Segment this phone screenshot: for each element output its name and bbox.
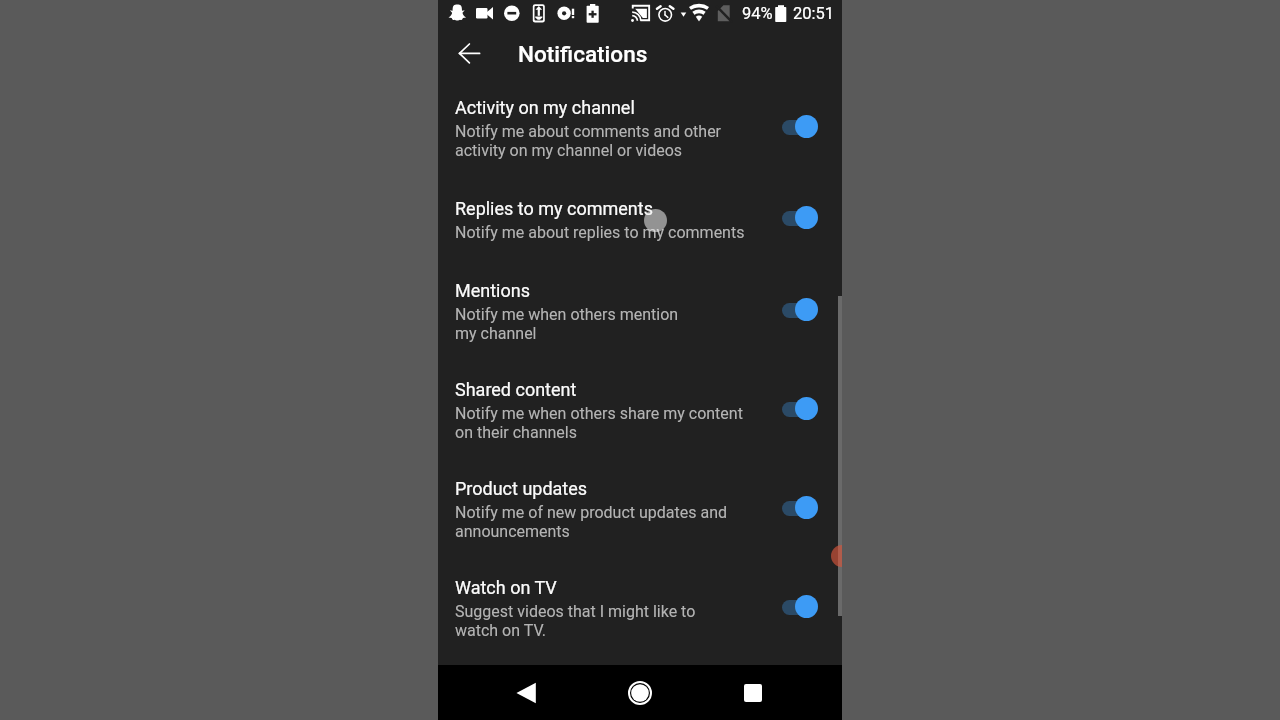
staticText: Shared content: [455, 379, 577, 400]
button[interactable]: Toggle: [779, 207, 824, 233]
button[interactable]: Mentions: [438, 262, 842, 361]
staticText: Notifications: [518, 41, 648, 67]
button[interactable]: Activity on my channel: [438, 79, 842, 178]
button[interactable]: Product updates: [438, 460, 842, 559]
staticText: Notify me about replies to my comments: [455, 223, 745, 242]
button[interactable]: Replies to my comments: [438, 178, 842, 262]
button[interactable]: Toggle: [779, 398, 824, 424]
staticText: activity on my channel or videos: [455, 141, 683, 160]
staticText: announcements: [455, 522, 570, 541]
staticText: 94%: [742, 4, 773, 23]
staticText: 20:51: [793, 4, 835, 23]
button[interactable]: Back: [447, 33, 489, 75]
staticText: my channel: [455, 324, 537, 343]
staticText: Activity on my channel: [455, 97, 635, 118]
button[interactable]: Toggle: [779, 497, 824, 523]
staticText: Suggest videos that I might like to: [455, 602, 696, 621]
staticText: Mentions: [455, 280, 530, 301]
staticText: Watch on TV: [455, 577, 557, 598]
staticText: Notify me when others share my content: [455, 404, 743, 423]
staticText: on their channels: [455, 423, 577, 442]
button[interactable]: Shared content: [438, 361, 842, 460]
button[interactable]: Toggle: [779, 299, 824, 325]
staticText: Notify me of new product updates and: [455, 503, 728, 522]
button[interactable]: Watch on TV: [438, 559, 842, 658]
staticText: Notify me when others mention: [455, 305, 679, 324]
staticText: Notify me about comments and other: [455, 122, 722, 141]
staticText: watch on TV.: [455, 621, 547, 640]
staticText: Product updates: [455, 478, 588, 499]
button[interactable]: Recents: [729, 669, 777, 717]
button[interactable]: Toggle: [779, 116, 824, 142]
button[interactable]: Toggle: [779, 596, 824, 622]
button[interactable]: Back: [503, 669, 551, 717]
staticText: Replies to my comments: [455, 198, 653, 219]
button[interactable]: Home: [616, 669, 664, 717]
